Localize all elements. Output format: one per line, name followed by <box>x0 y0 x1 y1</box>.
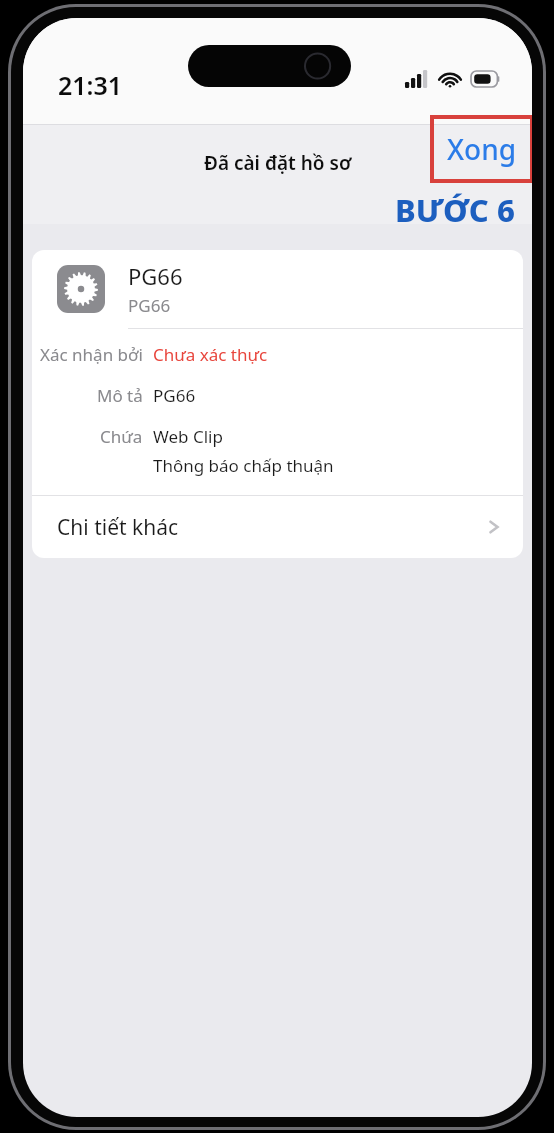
staticText: PG66 <box>128 261 183 291</box>
staticText: 21:31 <box>58 68 123 102</box>
staticText: Đã cài đặt hồ sơ <box>204 150 352 176</box>
staticText: Chi tiết khác <box>57 513 179 542</box>
staticText: Chứa <box>100 425 143 448</box>
staticText: Web Clip <box>153 425 223 448</box>
staticText: PG66 <box>128 294 171 317</box>
other: Profile icon <box>57 265 105 313</box>
staticText: Xác nhận bởi <box>40 343 143 366</box>
button[interactable]: Profile icon <box>32 250 523 328</box>
staticText: PG66 <box>153 384 196 407</box>
staticText: BƯỚC 6 <box>395 189 515 231</box>
staticText: Chưa xác thực <box>153 343 268 366</box>
button[interactable]: Xong <box>430 115 532 183</box>
staticText: Mô tả <box>97 384 143 407</box>
staticText: Thông báo chấp thuận <box>153 454 334 477</box>
staticText: Xong <box>447 130 517 168</box>
button[interactable]: Chi tiết khác <box>32 496 523 558</box>
